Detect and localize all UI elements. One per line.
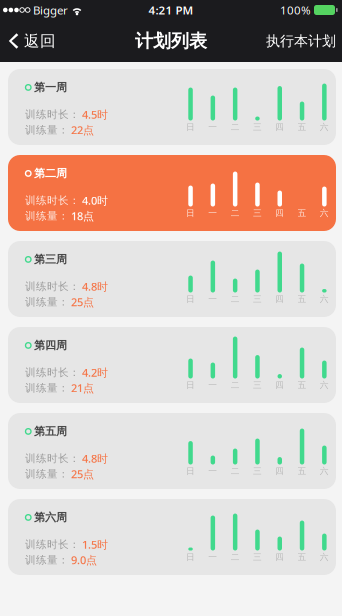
staticText: 二 bbox=[231, 207, 240, 218]
staticText: 日 bbox=[186, 379, 195, 390]
staticText: 4.2时 bbox=[82, 365, 108, 380]
staticText: 五 bbox=[297, 379, 306, 390]
staticText: 三 bbox=[253, 293, 262, 304]
staticText: 计划列表 bbox=[135, 30, 207, 52]
staticText: 第三周 bbox=[34, 252, 67, 266]
staticText: 日 bbox=[186, 293, 195, 304]
staticText: 4.8时 bbox=[82, 279, 108, 294]
staticText: 六 bbox=[320, 551, 329, 562]
button[interactable]: 第三周 bbox=[8, 241, 336, 317]
staticText: 一 bbox=[208, 121, 217, 132]
staticText: 训练量： bbox=[25, 467, 69, 481]
staticText: 100% bbox=[280, 2, 311, 18]
staticText: 二 bbox=[231, 121, 240, 132]
staticText: 训练时长： bbox=[25, 194, 80, 207]
staticText: 第四周 bbox=[34, 338, 67, 352]
staticText: 三 bbox=[253, 465, 262, 476]
button[interactable]: 第五周 bbox=[8, 413, 336, 489]
staticText: 三 bbox=[253, 379, 262, 390]
button[interactable]: 第二周 bbox=[8, 155, 336, 231]
staticText: 六 bbox=[320, 293, 329, 304]
staticText: 日 bbox=[186, 551, 195, 562]
staticText: 4.8时 bbox=[82, 451, 108, 466]
staticText: 21点 bbox=[71, 380, 94, 395]
staticText: 六 bbox=[320, 121, 329, 132]
staticText: 9.0点 bbox=[71, 552, 97, 567]
staticText: 一 bbox=[208, 293, 217, 304]
staticText: 训练量： bbox=[25, 381, 69, 395]
staticText: 第二周 bbox=[34, 166, 67, 180]
staticText: 四 bbox=[275, 465, 284, 476]
staticText: 4.5时 bbox=[82, 107, 108, 122]
staticText: 一 bbox=[208, 465, 217, 476]
staticText: 训练量： bbox=[25, 295, 69, 309]
staticText: 返回 bbox=[24, 31, 56, 51]
staticText: 第五周 bbox=[34, 424, 67, 438]
staticText: Bigger bbox=[33, 2, 68, 18]
staticText: 一 bbox=[208, 551, 217, 562]
button[interactable]: 第六周 bbox=[8, 499, 336, 575]
staticText: 二 bbox=[231, 551, 240, 562]
staticText: 日 bbox=[186, 207, 195, 218]
staticText: 22点 bbox=[71, 122, 94, 137]
staticText: 训练量： bbox=[25, 123, 69, 137]
staticText: 三 bbox=[253, 551, 262, 562]
staticText: 五 bbox=[297, 465, 306, 476]
staticText: 1.5时 bbox=[82, 537, 108, 552]
staticText: 五 bbox=[297, 207, 306, 218]
staticText: 一 bbox=[208, 207, 217, 218]
staticText: 训练时长： bbox=[25, 108, 80, 121]
staticText: 训练时长： bbox=[25, 280, 80, 293]
staticText: 4:21 PM bbox=[148, 2, 193, 18]
staticText: 四 bbox=[275, 121, 284, 132]
staticText: 四 bbox=[275, 207, 284, 218]
staticText: 执行本计划 bbox=[266, 32, 336, 50]
staticText: 训练量： bbox=[25, 209, 69, 223]
staticText: 五 bbox=[297, 293, 306, 304]
staticText: 六 bbox=[320, 379, 329, 390]
staticText: 二 bbox=[231, 465, 240, 476]
button[interactable]: 返回 bbox=[0, 23, 56, 59]
staticText: 训练时长： bbox=[25, 452, 80, 465]
button[interactable]: 执行本计划 bbox=[266, 23, 342, 59]
staticText: 三 bbox=[253, 207, 262, 218]
staticText: 六 bbox=[320, 207, 329, 218]
staticText: 25点 bbox=[71, 466, 94, 481]
button[interactable]: 第一周 bbox=[8, 69, 336, 145]
staticText: 日 bbox=[186, 465, 195, 476]
staticText: 日 bbox=[186, 121, 195, 132]
staticText: 训练时长： bbox=[25, 538, 80, 551]
staticText: 四 bbox=[275, 551, 284, 562]
staticText: 六 bbox=[320, 465, 329, 476]
staticText: 训练量： bbox=[25, 553, 69, 567]
staticText: 训练时长： bbox=[25, 366, 80, 379]
staticText: 25点 bbox=[71, 294, 94, 309]
staticText: 第一周 bbox=[34, 80, 67, 94]
staticText: 18点 bbox=[71, 208, 94, 223]
staticText: 三 bbox=[253, 121, 262, 132]
staticText: 4.0时 bbox=[82, 193, 108, 208]
staticText: 一 bbox=[208, 379, 217, 390]
staticText: 二 bbox=[231, 379, 240, 390]
staticText: 四 bbox=[275, 379, 284, 390]
staticText: 二 bbox=[231, 293, 240, 304]
staticText: 四 bbox=[275, 293, 284, 304]
staticText: 第六周 bbox=[34, 510, 67, 524]
button[interactable]: 第四周 bbox=[8, 327, 336, 403]
staticText: 五 bbox=[297, 551, 306, 562]
staticText: 五 bbox=[297, 121, 306, 132]
